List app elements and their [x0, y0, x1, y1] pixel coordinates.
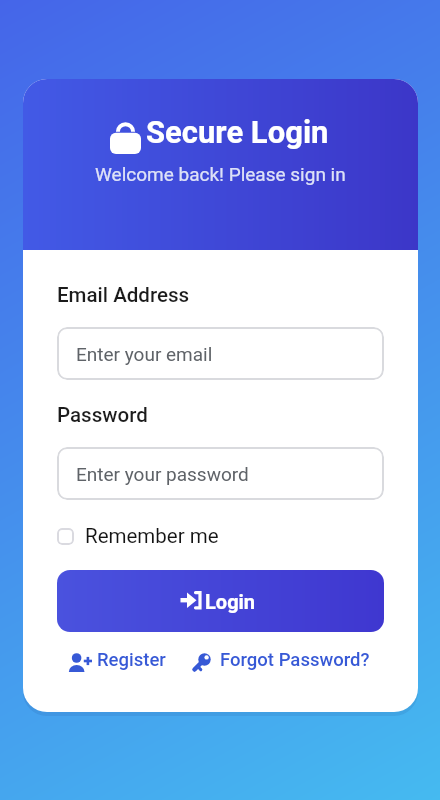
- button[interactable]: Login: [57, 570, 384, 632]
- button[interactable]: Enter your email: [57, 327, 384, 380]
- button[interactable]: Enter your password: [57, 447, 384, 500]
- staticText: Enter your password: [76, 463, 249, 485]
- staticText: Login: [205, 590, 256, 613]
- staticText: Email Address: [57, 283, 190, 307]
- staticText: Remember me: [85, 524, 219, 548]
- button[interactable]: Register: [66, 648, 166, 672]
- staticText: Secure Login: [146, 114, 329, 150]
- button[interactable]: Forgot Password?: [191, 648, 370, 672]
- staticText: Enter your email: [76, 343, 213, 365]
- staticText: Password: [57, 403, 148, 427]
- staticText: Register: [97, 649, 166, 671]
- button[interactable]: Remember me: [57, 524, 219, 548]
- staticText: Welcome back! Please sign in: [95, 163, 346, 185]
- staticText: Forgot Password?: [220, 649, 370, 671]
